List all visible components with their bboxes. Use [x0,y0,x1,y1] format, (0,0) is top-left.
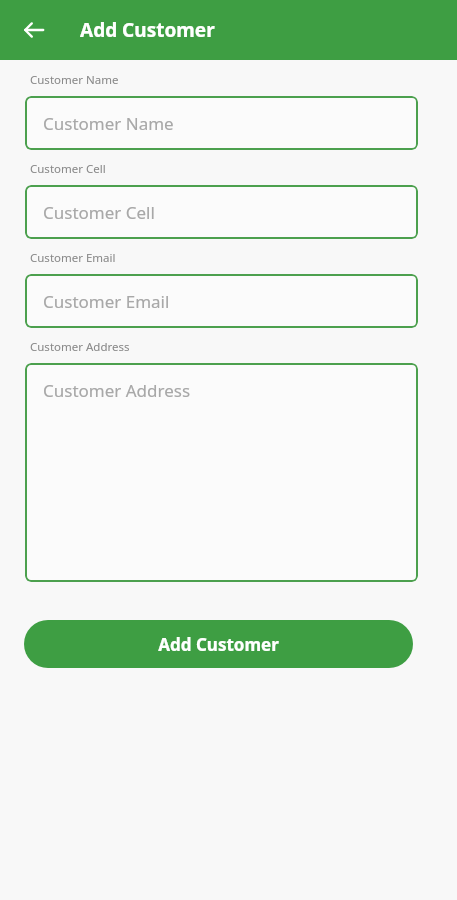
staticText: Customer Address [30,339,130,355]
staticText: Customer Email [43,290,170,313]
staticText: Add Customer [80,17,215,43]
button[interactable]: Customer Address [25,363,418,582]
button[interactable]: Add Customer [24,620,413,668]
staticText: Customer Address [43,379,191,402]
button[interactable]: Customer Name [25,96,418,150]
staticText: Customer Cell [43,201,155,224]
button[interactable]: Back [14,10,54,50]
button[interactable]: Customer Email [25,274,418,328]
staticText: Add Customer [158,633,279,656]
staticText: Customer Email [30,250,116,266]
staticText: Customer Name [30,72,119,88]
staticText: Customer Name [43,112,174,135]
staticText: Customer Cell [30,161,106,177]
button[interactable]: Customer Cell [25,185,418,239]
